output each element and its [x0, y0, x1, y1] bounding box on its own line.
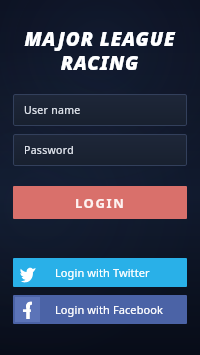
staticText: Login with Facebook: [55, 302, 164, 317]
button[interactable]: Login with Twitter: [13, 258, 187, 287]
staticText: Password: [24, 143, 74, 157]
staticText: MAJOR LEAGUE RACING: [24, 26, 176, 75]
button[interactable]: Login with Facebook: [13, 295, 187, 324]
button[interactable]: LOGIN: [13, 186, 187, 219]
staticText: MAJOR LEAGUE RACING: [24, 26, 176, 75]
staticText: LOGIN: [75, 194, 126, 212]
staticText: User name: [24, 103, 81, 117]
button[interactable]: User name: [13, 94, 187, 126]
staticText: Login with Twitter: [55, 265, 150, 280]
button[interactable]: Password: [13, 134, 187, 166]
